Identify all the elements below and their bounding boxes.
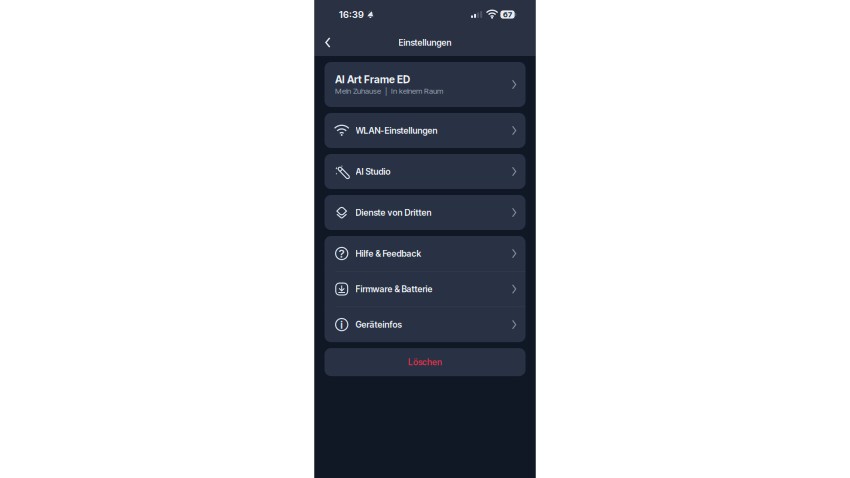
button[interactable]: ? <box>324 236 525 271</box>
button[interactable]: Dienste von Dritten <box>324 195 525 230</box>
button[interactable]: i <box>324 307 525 342</box>
staticText: Geräteinfos <box>356 319 402 330</box>
staticText: WLAN-Einstellungen <box>356 125 438 136</box>
button[interactable]: WLAN-Einstellungen <box>324 113 525 148</box>
staticText: AI Studio <box>356 166 391 177</box>
button[interactable]: Firmware & Batterie <box>324 272 525 307</box>
staticText: Löschen <box>408 357 442 367</box>
staticText: Einstellungen <box>398 37 451 48</box>
staticText: AI Art Frame ED <box>335 73 410 86</box>
button[interactable]: AI Studio <box>324 154 525 189</box>
staticText: 67 <box>503 10 512 19</box>
staticText: Dienste von Dritten <box>356 207 432 218</box>
button[interactable]: Löschen <box>324 348 525 376</box>
staticText: Hilfe & Feedback <box>356 248 422 259</box>
staticText: i <box>340 318 343 331</box>
button[interactable]: AI Art Frame ED <box>324 62 525 107</box>
staticText: ? <box>339 247 345 260</box>
staticText: Mein Zuhause | In keinem Raum <box>335 86 443 96</box>
staticText: 16:39 <box>339 9 364 20</box>
button[interactable]: Back <box>319 31 337 53</box>
staticText: Firmware & Batterie <box>356 284 433 294</box>
